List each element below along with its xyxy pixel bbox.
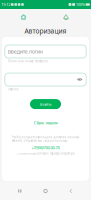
staticText: Авторизация	[24, 27, 66, 35]
staticText: 19:12	[1, 2, 10, 7]
button[interactable]: +7(900)700-00-70	[31, 145, 59, 150]
staticText: +7(900)700-00-70	[31, 145, 59, 150]
button[interactable]: Войти	[30, 99, 61, 109]
button[interactable]: Logo	[17, 11, 29, 23]
staticText: Пароль	[8, 87, 18, 91]
staticText: Войти	[40, 101, 51, 107]
staticText: Чтобы получить пароль для доступа в личн…	[11, 135, 79, 142]
button[interactable]: Home	[39, 184, 51, 198]
staticText: 100%	[76, 2, 85, 7]
button[interactable]: Back	[65, 184, 77, 198]
button[interactable]: Recent apps	[14, 184, 26, 198]
staticText: Логин или номер телефона	[8, 59, 47, 63]
staticText: Сброс пароля	[33, 120, 57, 125]
button[interactable]: Eco	[60, 11, 72, 23]
staticText: Стоимость SMS согласно тарифу оператора	[17, 152, 74, 155]
staticText: Введите логин	[8, 48, 43, 55]
button[interactable]: Сброс пароля	[33, 120, 57, 125]
